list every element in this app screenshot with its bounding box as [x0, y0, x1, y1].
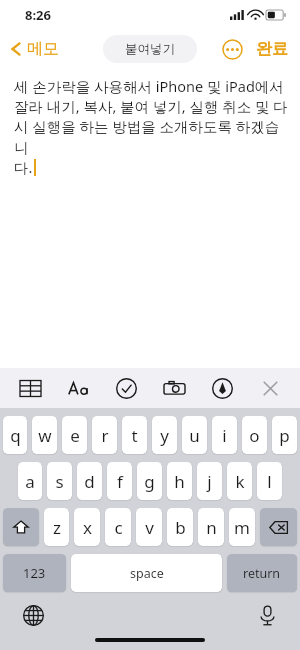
- staticText: 완료: [256, 39, 288, 59]
- staticText: a: [25, 470, 35, 493]
- button[interactable]: o: [242, 416, 267, 454]
- staticText: c: [114, 516, 123, 539]
- staticText: x: [83, 516, 92, 539]
- button[interactable]: 완료: [254, 35, 290, 63]
- staticText: h: [174, 470, 185, 493]
- button[interactable]: d: [77, 462, 102, 500]
- staticText: 시 실행을 하는 방법을 소개하도록 하겠습니: [14, 116, 290, 157]
- button[interactable]: a: [18, 462, 42, 500]
- button[interactable]: n: [198, 508, 224, 546]
- button[interactable]: Dictation: [252, 600, 282, 630]
- staticText: u: [189, 424, 200, 447]
- button[interactable]: p: [272, 416, 297, 454]
- button[interactable]: Text format: [60, 370, 96, 406]
- button[interactable]: 메모: [8, 39, 59, 59]
- button[interactable]: 붙여넣기: [103, 35, 197, 63]
- button[interactable]: space: [71, 554, 222, 592]
- staticText: 다.: [14, 157, 33, 177]
- button[interactable]: w: [32, 416, 57, 454]
- button[interactable]: j: [197, 462, 222, 500]
- button[interactable]: m: [229, 508, 255, 546]
- button[interactable]: Switch keyboard: [18, 600, 48, 630]
- button[interactable]: g: [137, 462, 162, 500]
- staticText: v: [145, 516, 154, 539]
- button[interactable]: Camera: [156, 370, 192, 406]
- staticText: 잘라 내기, 복사, 붙여 넣기, 실행 취소 및 다: [14, 96, 288, 116]
- staticText: l: [267, 470, 272, 493]
- staticText: 8:26: [25, 6, 51, 24]
- button[interactable]: l: [257, 462, 282, 500]
- staticText: y: [160, 424, 169, 447]
- button[interactable]: t: [122, 416, 147, 454]
- staticText: 메모: [27, 39, 59, 59]
- button[interactable]: More options: [219, 36, 245, 62]
- button[interactable]: Markup: [204, 370, 240, 406]
- button[interactable]: 123: [3, 554, 66, 592]
- button[interactable]: f: [107, 462, 132, 500]
- button[interactable]: c: [105, 508, 131, 546]
- staticText: w: [38, 424, 52, 447]
- button[interactable]: Checklist: [108, 370, 144, 406]
- button[interactable]: return: [227, 554, 297, 592]
- button[interactable]: Backspace: [260, 508, 297, 546]
- staticText: t: [131, 424, 138, 447]
- button[interactable]: b: [167, 508, 193, 546]
- staticText: g: [144, 470, 155, 493]
- button[interactable]: Close keyboard: [252, 370, 288, 406]
- button[interactable]: i: [212, 416, 237, 454]
- staticText: k: [235, 470, 245, 493]
- staticText: return: [243, 565, 281, 582]
- staticText: b: [175, 516, 186, 539]
- button[interactable]: q: [3, 416, 27, 454]
- staticText: 123: [23, 564, 46, 582]
- button[interactable]: x: [74, 508, 100, 546]
- button[interactable]: v: [136, 508, 162, 546]
- button[interactable]: u: [182, 416, 207, 454]
- button[interactable]: y: [152, 416, 177, 454]
- staticText: s: [55, 470, 64, 493]
- staticText: d: [84, 470, 95, 493]
- staticText: e: [70, 424, 80, 447]
- staticText: i: [222, 424, 227, 447]
- staticText: j: [207, 470, 212, 493]
- button[interactable]: z: [44, 508, 69, 546]
- staticText: f: [117, 470, 123, 493]
- staticText: n: [206, 516, 217, 539]
- button[interactable]: e: [62, 416, 87, 454]
- staticText: q: [10, 424, 21, 447]
- staticText: m: [234, 516, 250, 539]
- staticText: 붙여넣기: [125, 41, 175, 57]
- button[interactable]: k: [227, 462, 252, 500]
- button[interactable]: Table: [12, 370, 48, 406]
- staticText: r: [101, 424, 109, 447]
- button[interactable]: r: [92, 416, 117, 454]
- button[interactable]: h: [167, 462, 192, 500]
- staticText: space: [130, 565, 164, 582]
- button[interactable]: Shift: [3, 508, 39, 546]
- staticText: p: [279, 424, 290, 447]
- staticText: z: [53, 516, 61, 539]
- staticText: o: [249, 424, 260, 447]
- button[interactable]: s: [47, 462, 72, 500]
- staticText: 세 손가락을 사용해서 iPhone 및 iPad에서: [14, 76, 284, 96]
